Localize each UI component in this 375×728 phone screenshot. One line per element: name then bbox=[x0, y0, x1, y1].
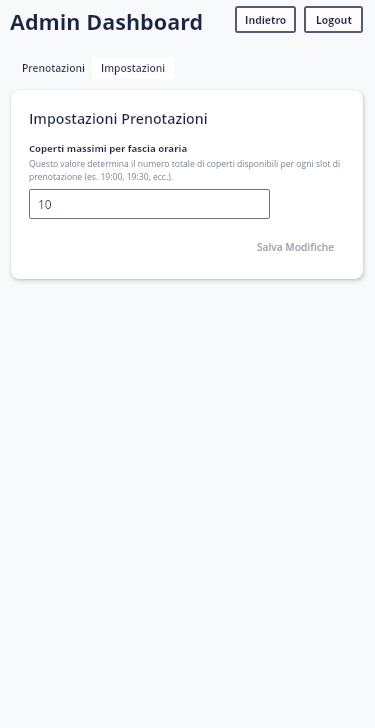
staticText: Salva Modifiche bbox=[257, 240, 335, 254]
button[interactable]: Impostazioni bbox=[92, 57, 175, 79]
staticText: Coperti massimi per fascia oraria bbox=[29, 142, 188, 155]
button[interactable]: Coperti massimi, valore 10 bbox=[29, 189, 270, 219]
staticText: Admin Dashboard bbox=[10, 7, 204, 36]
staticText: Impostazioni Prenotazioni bbox=[29, 109, 208, 128]
button[interactable]: Prenotazioni bbox=[13, 57, 94, 79]
button[interactable]: Indietro bbox=[235, 6, 296, 33]
button[interactable]: Salva Modifiche bbox=[248, 235, 344, 259]
staticText: Questo valore determina il numero totale… bbox=[29, 158, 347, 182]
staticText: Prenotazioni bbox=[22, 61, 85, 75]
button[interactable]: Logout bbox=[304, 6, 363, 33]
staticText: Indietro bbox=[245, 13, 287, 27]
staticText: Impostazioni bbox=[101, 61, 166, 75]
staticText: 10 bbox=[38, 196, 52, 212]
staticText: Logout bbox=[316, 13, 352, 27]
